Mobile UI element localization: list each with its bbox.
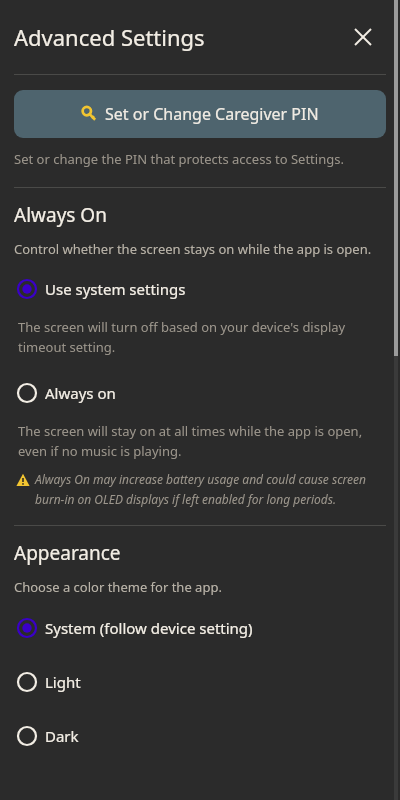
staticText: Set or Change Caregiver PIN — [105, 103, 319, 125]
staticText: Always On may increase battery usage and… — [35, 471, 386, 507]
button[interactable]: Close — [343, 17, 383, 57]
staticText: The screen will turn off based on your d… — [18, 318, 378, 356]
button[interactable]: Set or Change Caregiver PIN — [14, 90, 386, 138]
staticText: Set or change the PIN that protects acce… — [14, 150, 344, 168]
button[interactable]: Always on — [0, 376, 400, 410]
staticText: Always On — [14, 202, 107, 228]
staticText: Dark — [45, 726, 79, 746]
staticText: The screen will stay on at all times whi… — [18, 422, 386, 460]
button[interactable]: System (follow device setting) — [0, 611, 400, 645]
button[interactable]: Dark — [0, 719, 400, 753]
staticText: Choose a color theme for the app. — [14, 578, 222, 596]
staticText: System (follow device setting) — [45, 618, 253, 638]
staticText: Appearance — [14, 540, 121, 566]
staticText: Advanced Settings — [14, 22, 205, 52]
staticText: Control whether the screen stays on whil… — [14, 240, 372, 258]
staticText: Light — [45, 672, 81, 692]
button[interactable]: Use system settings — [0, 272, 400, 306]
staticText: Always on — [45, 383, 116, 403]
button[interactable]: Light — [0, 665, 400, 699]
staticText: Use system settings — [45, 279, 186, 299]
